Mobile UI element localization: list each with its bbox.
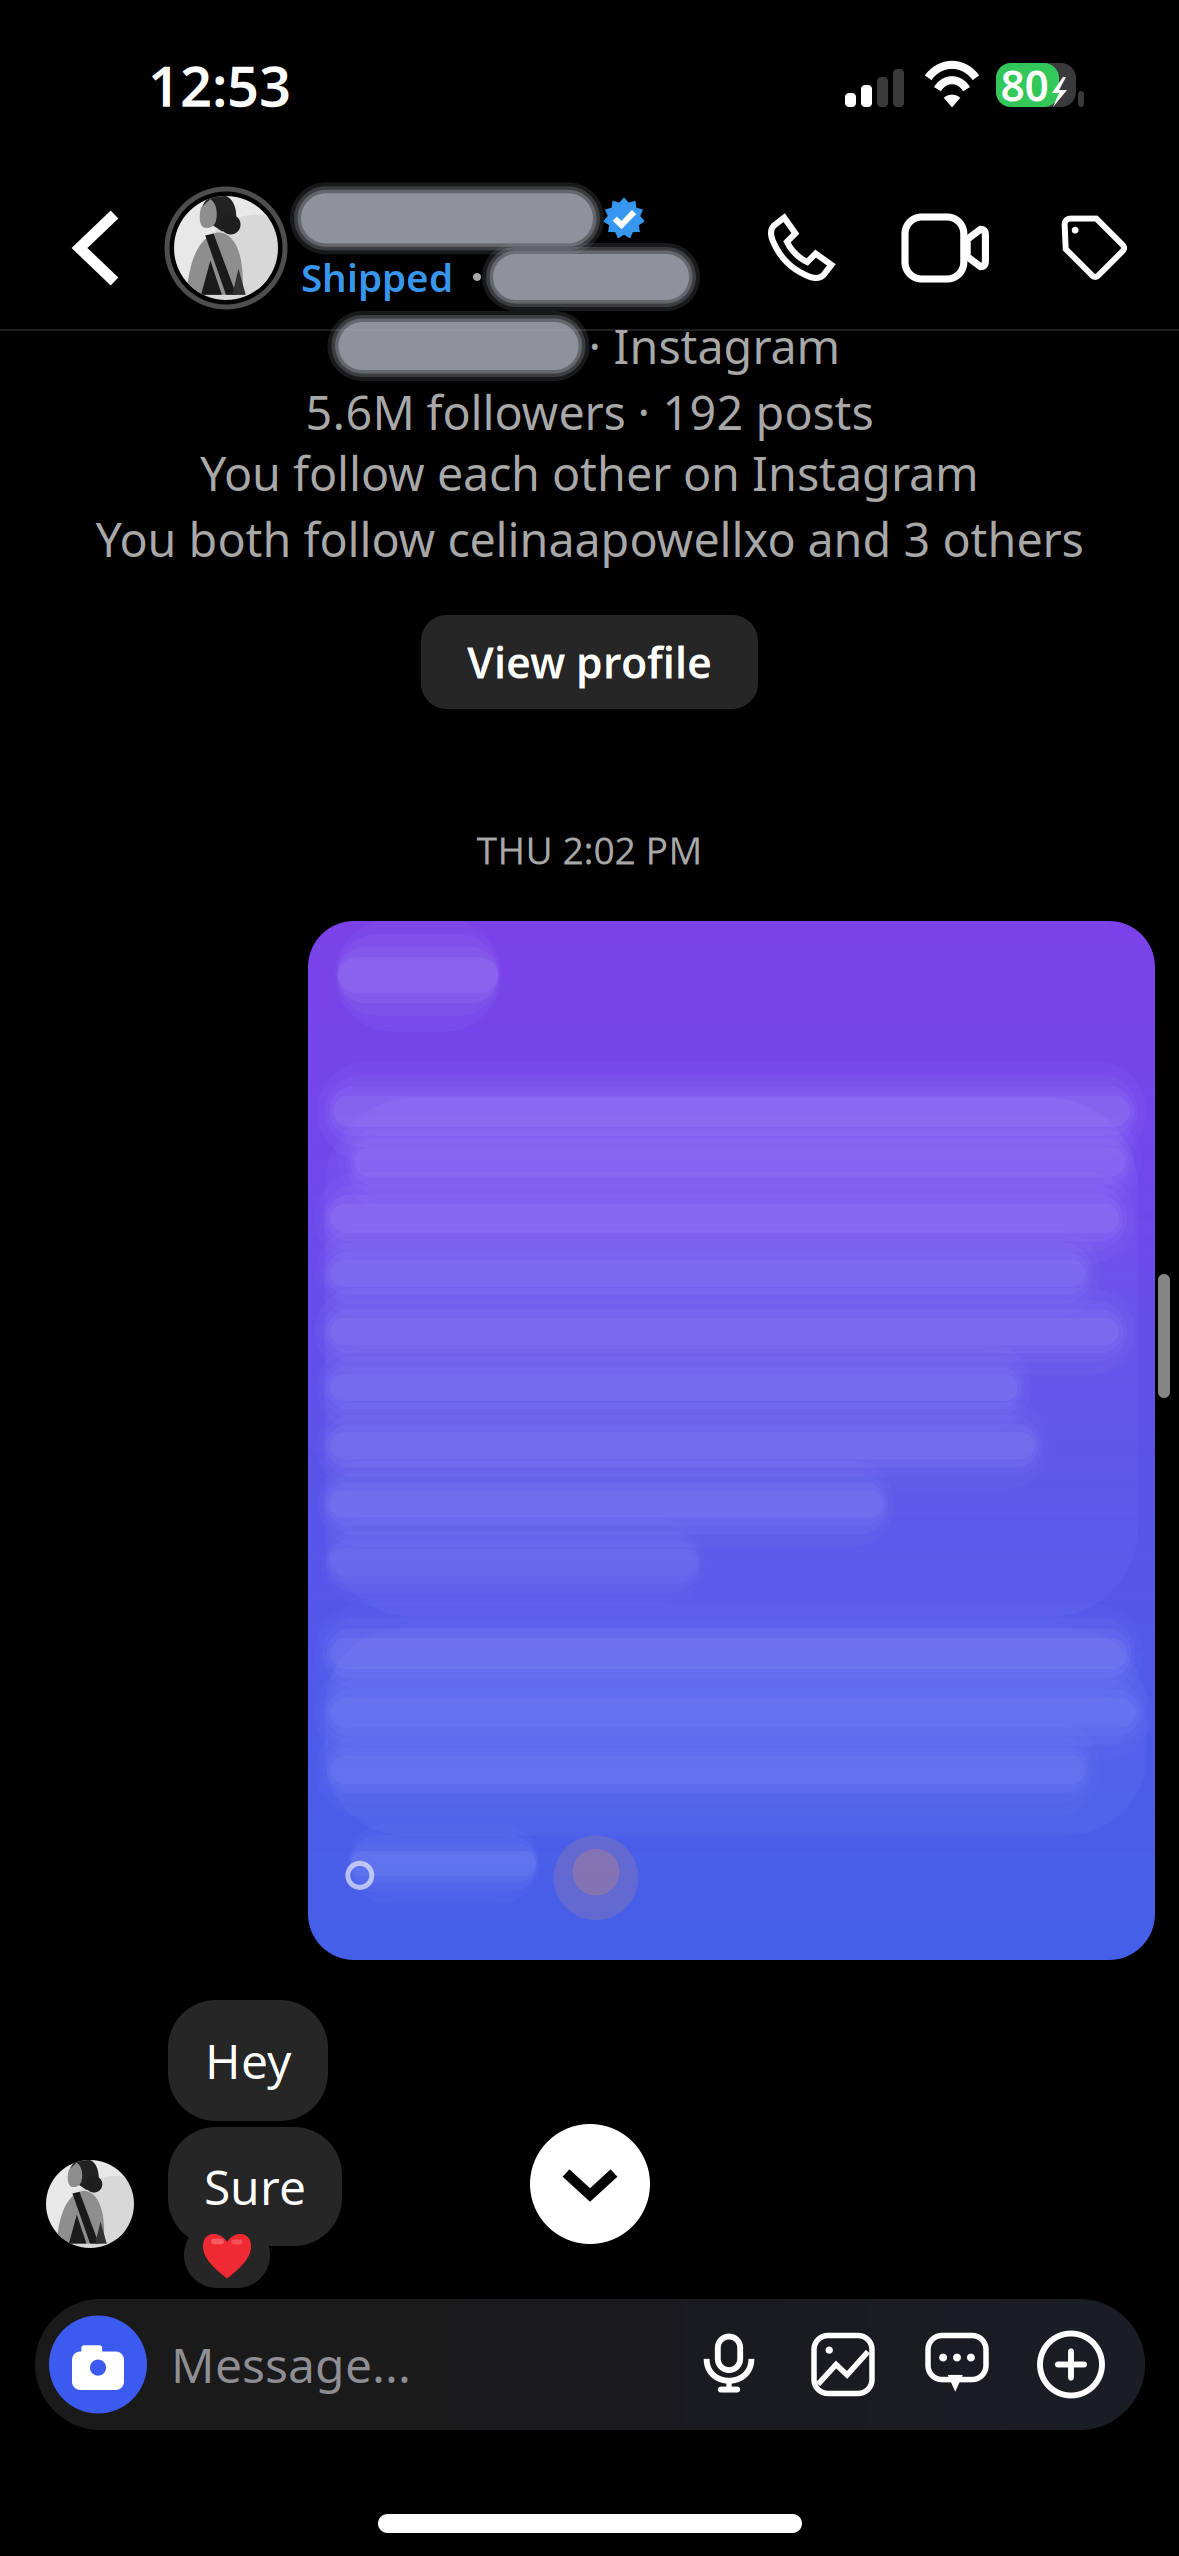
staticText: View profile [467,634,712,690]
button[interactable]: Audio call [755,202,847,294]
button[interactable]: Back [70,208,124,288]
staticText: You follow each other on Instagram [200,442,979,504]
staticText: · Instagram [588,315,840,377]
button[interactable]: Sticker [900,2312,1014,2416]
button[interactable]: Camera [49,2315,147,2413]
staticText: 80 [1000,57,1048,113]
button[interactable]: Video call [901,202,993,294]
button[interactable]: Shop [1047,202,1139,294]
staticText: Hey [205,2029,291,2092]
button[interactable]: Shipped [167,188,727,308]
staticText: 5.6M followers · 192 posts [305,381,873,443]
staticText: You both follow celinaapowellxo and 3 ot… [95,508,1083,570]
button[interactable]: More options [1014,2312,1128,2416]
staticText: Sure [204,2155,306,2218]
button[interactable]: Scroll to latest [530,2124,650,2244]
button[interactable]: Photo [786,2312,900,2416]
staticText: THU 2:02 PM [476,825,702,875]
staticText: Message... [171,2333,411,2396]
staticText: 12:53 [148,48,291,122]
staticText: Shipped [301,251,453,303]
button[interactable]: Voice message [672,2312,786,2416]
button[interactable]: View profile [421,615,758,709]
